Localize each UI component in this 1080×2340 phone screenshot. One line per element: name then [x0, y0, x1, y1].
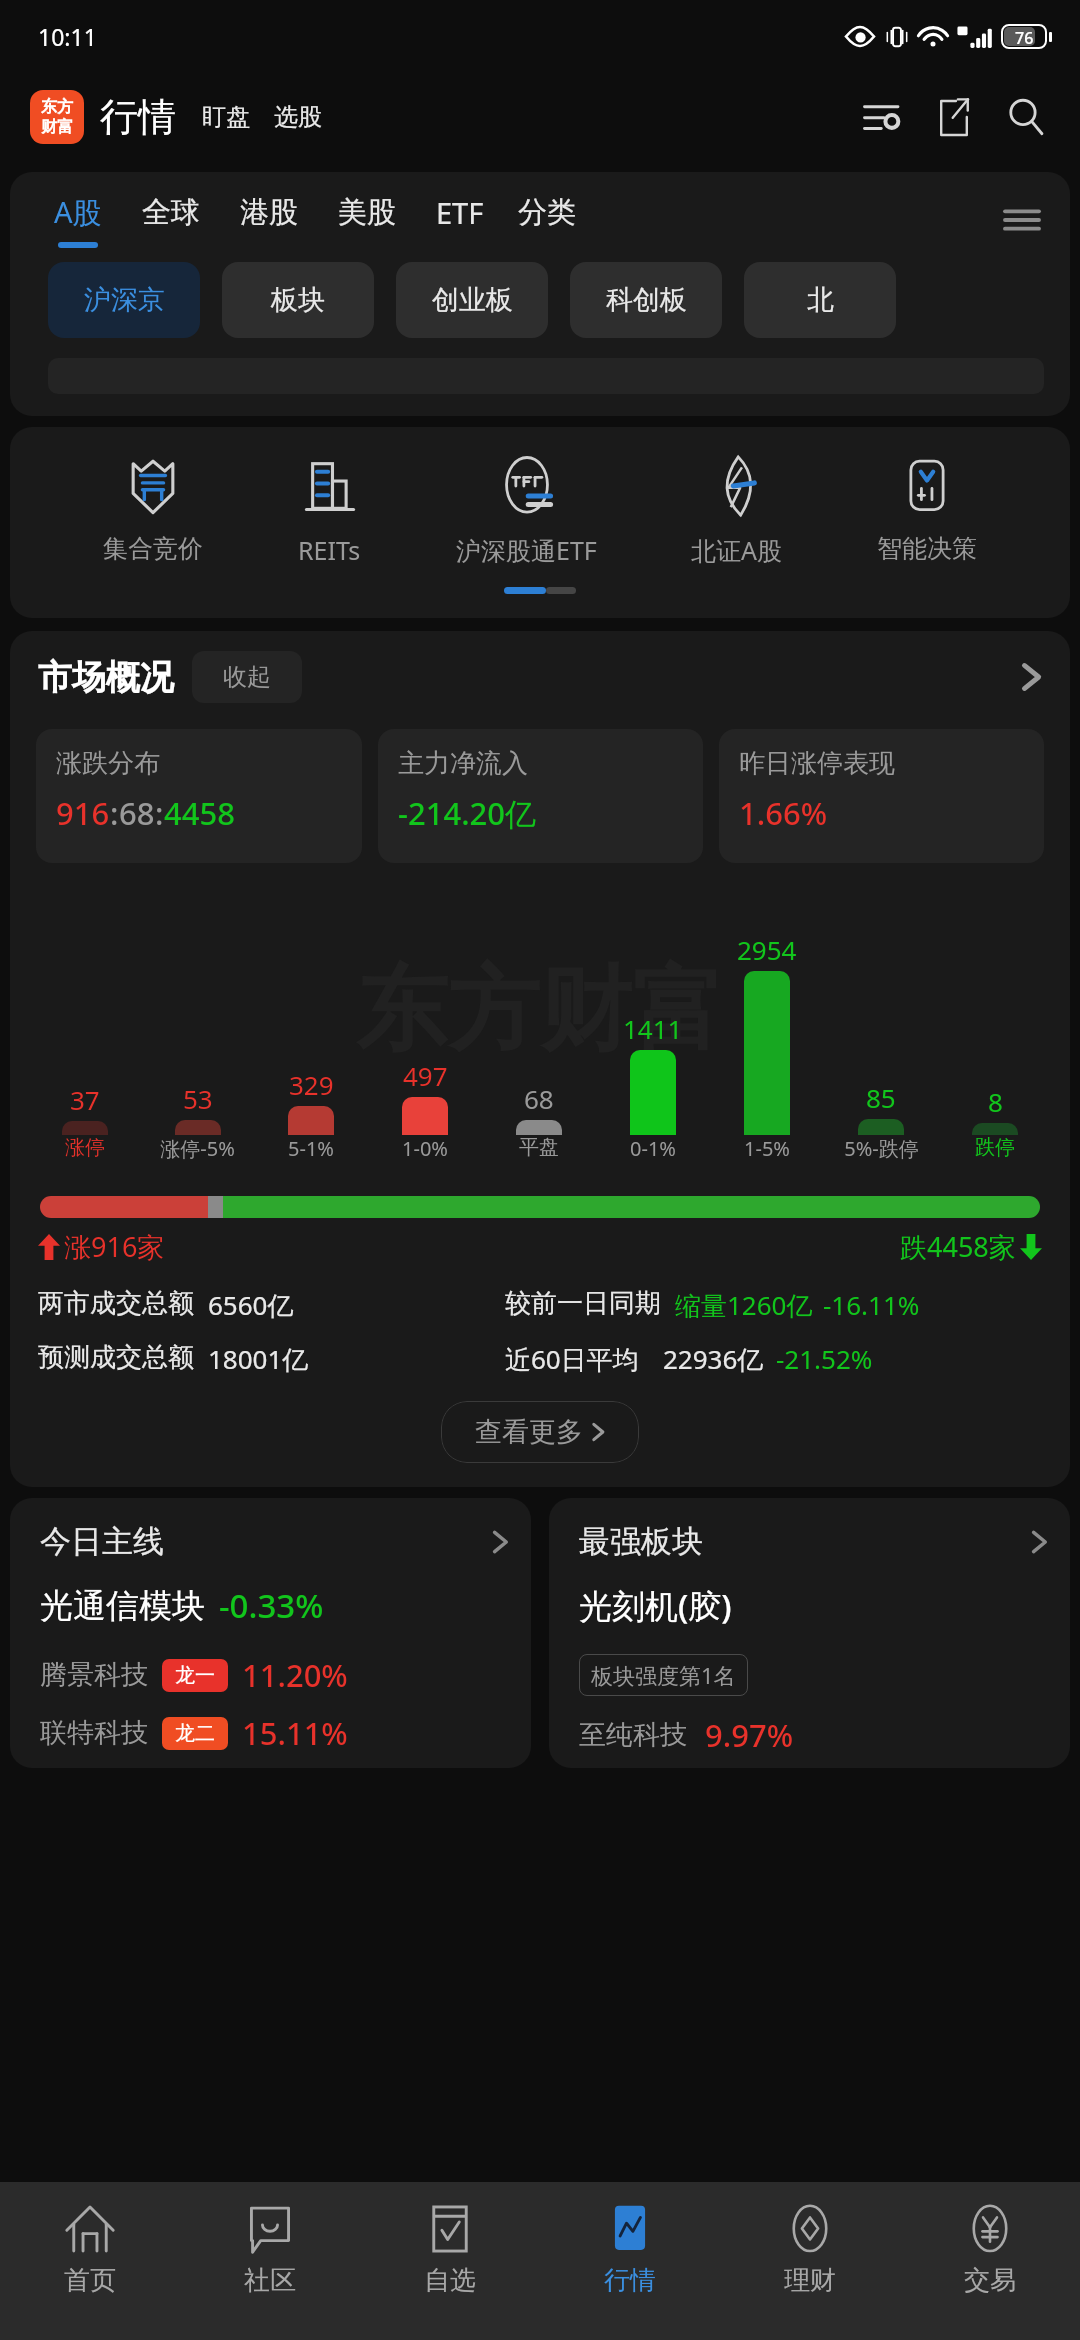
button[interactable]: 选股	[274, 102, 322, 132]
button[interactable]: 科创板	[570, 262, 722, 338]
staticText: 329	[289, 1067, 334, 1102]
staticText: 22936亿	[663, 1341, 764, 1377]
button[interactable]: 市场概况	[10, 651, 1070, 703]
button[interactable]: ETF	[416, 193, 504, 248]
button[interactable]: 沪深京	[48, 262, 200, 338]
staticText: 916	[56, 792, 110, 834]
staticText: 港股	[240, 194, 298, 231]
staticText: 跌4458家	[900, 1228, 1016, 1265]
staticText: 集合竞价	[103, 533, 203, 564]
staticText: -21.52%	[776, 1341, 873, 1376]
button[interactable]: 涨跌分布	[36, 729, 362, 863]
staticText: 涨停	[65, 1135, 105, 1160]
button[interactable]: 主力净流入	[378, 729, 703, 863]
button[interactable]: 板块	[222, 262, 374, 338]
button[interactable]: 北证A股	[689, 455, 784, 567]
staticText: 5-1%	[288, 1135, 334, 1162]
staticText: 今日主线	[40, 1522, 164, 1561]
button[interactable]: 首页	[0, 2182, 180, 2340]
staticText: 行情	[604, 2264, 656, 2297]
staticText: 腾景科技	[40, 1658, 148, 1692]
button[interactable]: 查看更多	[441, 1401, 639, 1463]
staticText: 东方财富	[356, 952, 724, 1068]
button[interactable]: 行情	[100, 93, 176, 141]
other: Open market overview	[1020, 659, 1042, 695]
staticText: 至纯科技	[579, 1718, 687, 1752]
staticText: 1-0%	[402, 1135, 448, 1162]
button[interactable]: 集合竞价	[101, 455, 205, 564]
staticText: 68	[119, 792, 155, 834]
staticText: 85	[866, 1080, 896, 1115]
staticText: 市场概况	[38, 656, 174, 699]
staticText: 10:11	[38, 21, 97, 52]
staticText: 主力净流入	[398, 747, 528, 780]
staticText: ETF	[436, 193, 484, 232]
staticText: 76	[1015, 27, 1034, 46]
button[interactable]: 行情	[540, 2182, 720, 2340]
staticText: 53	[183, 1081, 213, 1116]
button[interactable]: 自选	[360, 2182, 540, 2340]
staticText: 全球	[142, 194, 200, 231]
staticText: -214.20亿	[398, 792, 537, 834]
button[interactable]: 昨日涨停表现	[719, 729, 1044, 863]
staticText: 分类	[518, 194, 576, 231]
staticText: 自选	[424, 2264, 476, 2297]
button[interactable]: Filter settings	[858, 93, 906, 141]
staticText: 收起	[223, 662, 271, 692]
staticText: 6560亿	[208, 1287, 294, 1323]
staticText: 智能决策	[877, 533, 977, 564]
staticText: 社区	[244, 2264, 296, 2297]
staticText: 15.11%	[242, 1712, 348, 1754]
staticText: 昨日涨停表现	[739, 747, 895, 780]
button[interactable]: 今日主线	[10, 1498, 531, 1768]
staticText: 北	[807, 283, 834, 317]
button[interactable]: 理财	[720, 2182, 900, 2340]
button[interactable]: 创业板	[396, 262, 548, 338]
staticText: 联特科技	[40, 1716, 148, 1750]
button[interactable]: 收起	[192, 651, 302, 703]
staticText: 近60日平均	[505, 1341, 639, 1377]
staticText: 板块强度第1名	[591, 1660, 736, 1690]
staticText: 较前一日同期	[505, 1287, 661, 1320]
staticText: 2954	[737, 932, 797, 967]
button[interactable]: More tabs	[1000, 198, 1044, 242]
button[interactable]: 交易	[900, 2182, 1080, 2340]
staticText: A股	[54, 192, 102, 232]
staticText: 缩量1260亿	[675, 1287, 813, 1323]
staticText: 9.97%	[705, 1714, 794, 1756]
button[interactable]: 盯盘	[202, 102, 250, 132]
staticText: 18001亿	[208, 1341, 309, 1377]
staticText: 8	[988, 1084, 1003, 1119]
button[interactable]: REITs	[296, 455, 363, 567]
staticText: 0-1%	[630, 1135, 676, 1162]
staticText: 11.20%	[242, 1654, 348, 1696]
button[interactable]: 最强板块	[549, 1498, 1070, 1768]
staticText: 5%-跌停	[844, 1135, 919, 1162]
staticText: 最强板块	[579, 1522, 703, 1561]
staticText: 创业板	[432, 283, 513, 317]
staticText: 查看更多	[475, 1415, 583, 1449]
staticText: 68	[524, 1081, 554, 1116]
button[interactable]: 全球	[122, 194, 220, 247]
staticText: 涨跌分布	[56, 747, 160, 780]
button[interactable]: 社区	[180, 2182, 360, 2340]
staticText: 首页	[64, 2264, 116, 2297]
staticText: 龙一	[175, 1663, 215, 1688]
staticText: 两市成交总额	[38, 1287, 194, 1320]
button[interactable]: A股	[34, 192, 122, 248]
button[interactable]: 美股	[318, 194, 416, 247]
button[interactable]: 沪深股通ETF	[454, 455, 599, 567]
staticText: 财富	[41, 117, 73, 137]
staticText: 涨916家	[64, 1228, 165, 1265]
button[interactable]: 分类	[518, 194, 576, 247]
button[interactable]: 港股	[220, 194, 318, 247]
button[interactable]: 智能决策	[875, 455, 979, 564]
button[interactable]: 北	[744, 262, 896, 338]
staticText: 科创板	[606, 283, 687, 317]
staticText: 东方	[41, 97, 73, 117]
button[interactable]: Share	[930, 93, 978, 141]
staticText: 光刻机(胶)	[579, 1583, 732, 1628]
button[interactable]: Search	[1002, 93, 1050, 141]
staticText: 龙二	[175, 1721, 215, 1746]
staticText: 理财	[784, 2264, 836, 2297]
